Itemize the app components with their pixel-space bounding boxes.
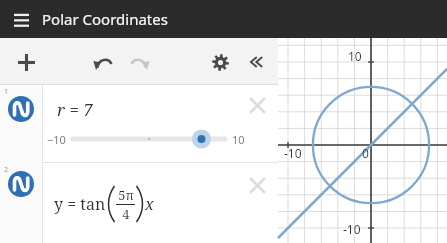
staticText: Polar Coordinates xyxy=(42,9,168,29)
button[interactable]: Settings xyxy=(204,46,236,78)
staticText: y = tan xyxy=(54,193,106,215)
button[interactable]: Undo xyxy=(86,46,118,78)
staticText: -10 xyxy=(343,221,361,237)
button[interactable]: Menu xyxy=(7,5,35,33)
button[interactable]: Collapse panel xyxy=(241,46,273,78)
button[interactable]: 2 xyxy=(0,163,278,243)
button[interactable]: 1 xyxy=(0,85,278,163)
staticText: −10 xyxy=(47,132,66,147)
staticText: 5π xyxy=(118,186,134,204)
staticText: x xyxy=(145,193,154,215)
button[interactable]: Redo xyxy=(124,46,156,78)
staticText: 4 xyxy=(122,205,130,223)
staticText: -10 xyxy=(284,145,302,161)
button[interactable]: Slider for r xyxy=(73,129,225,149)
staticText: 2 xyxy=(4,165,9,175)
staticText: r = 7 xyxy=(57,98,93,121)
button[interactable]: Delete expression xyxy=(242,170,272,200)
button[interactable]: Delete expression xyxy=(242,90,272,120)
button[interactable]: Add expression xyxy=(9,45,43,79)
staticText: 10 xyxy=(348,48,362,64)
staticText: 10 xyxy=(232,132,245,147)
staticText: 1 xyxy=(4,87,9,97)
staticText: 0 xyxy=(362,145,369,161)
